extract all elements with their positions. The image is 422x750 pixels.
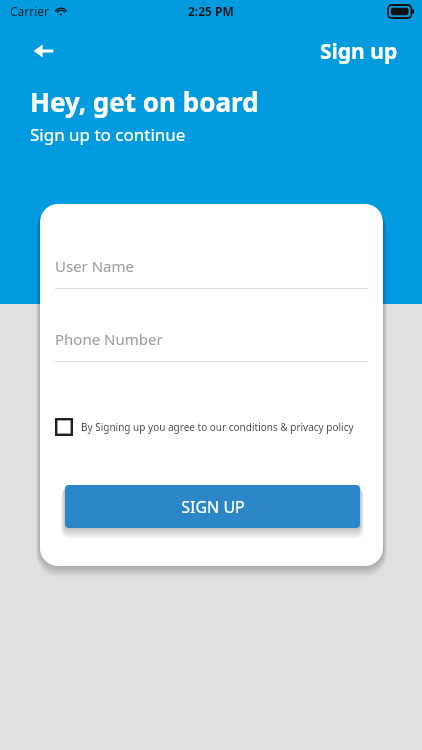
staticText: SIGN UP <box>181 496 245 518</box>
staticText: 2:25 PM <box>188 3 234 19</box>
staticText: Hey, get on board <box>30 84 259 119</box>
button[interactable]: By Signing up you agree to our condition… <box>55 414 380 440</box>
staticText: Sign up to continue <box>30 123 186 146</box>
button[interactable]: Back <box>22 29 66 73</box>
staticText: Phone Number <box>55 329 163 349</box>
staticText: Sign up <box>320 37 398 66</box>
staticText: User Name <box>55 256 135 276</box>
button[interactable]: User Name <box>55 256 368 289</box>
button[interactable]: Phone Number <box>55 329 368 362</box>
staticText: Carrier <box>10 3 50 19</box>
button[interactable]: Sign up <box>316 33 402 70</box>
staticText: By Signing up you agree to our condition… <box>81 420 354 434</box>
button[interactable]: SIGN UP <box>65 485 360 528</box>
